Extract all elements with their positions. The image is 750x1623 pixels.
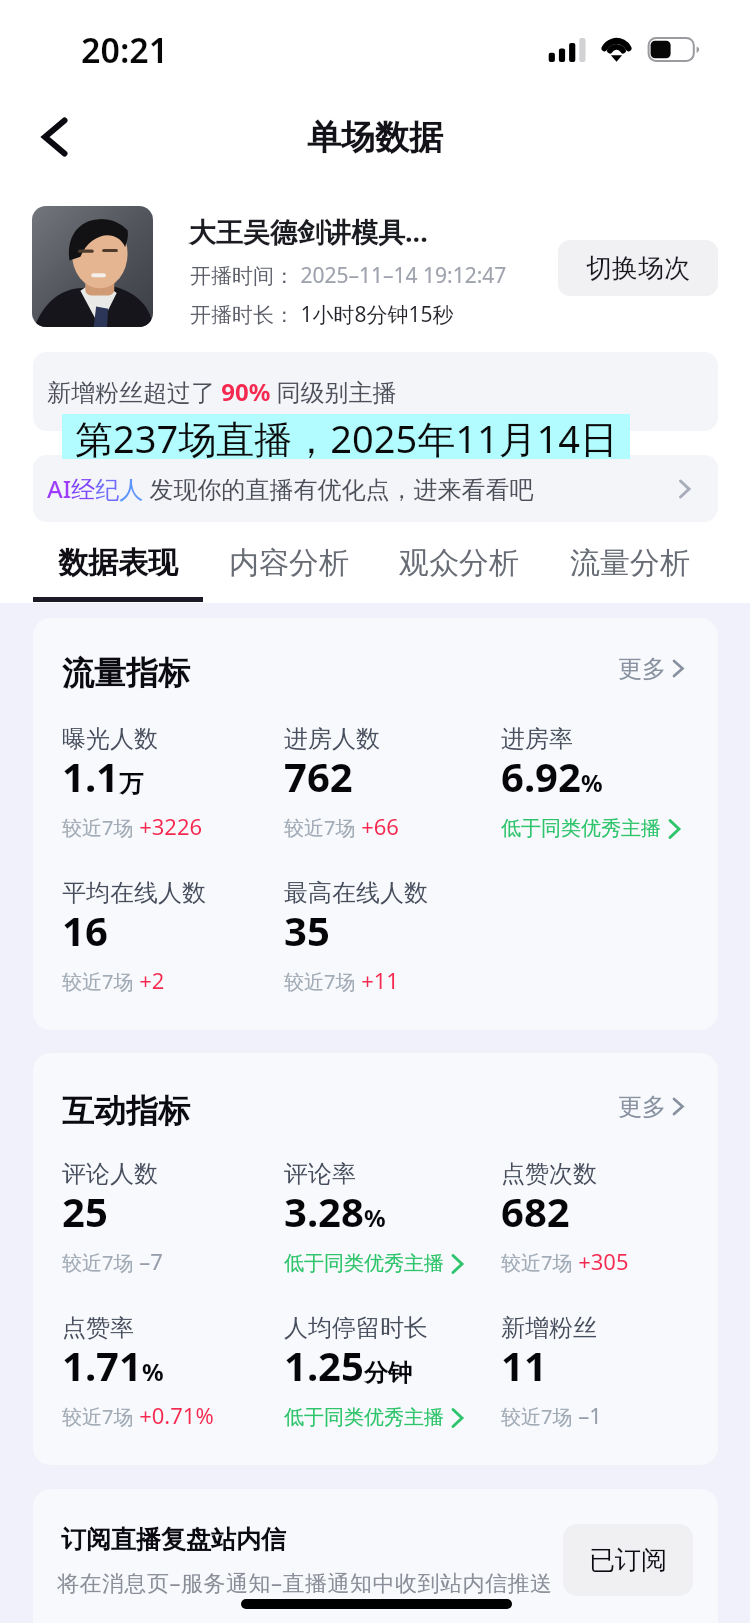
staticText: 较近7场 –1 bbox=[501, 1400, 602, 1430]
button[interactable]: 数据表现 bbox=[33, 528, 203, 604]
staticText: 11 bbox=[501, 1338, 547, 1392]
staticText: 1.71% bbox=[62, 1338, 164, 1392]
button[interactable]: 更多 bbox=[618, 1092, 688, 1122]
staticText: 20:21 bbox=[81, 27, 169, 73]
staticText: 第237场直播，2025年11月14日 bbox=[75, 412, 619, 464]
staticText: 开播时间： 2025–11–14 19:12:47 bbox=[190, 261, 507, 290]
staticText: 流量指标 bbox=[62, 653, 190, 693]
staticText: 3.28% bbox=[284, 1184, 386, 1238]
staticText: 低于同类优秀主播 bbox=[284, 1251, 444, 1276]
staticText: 新增粉丝超过了 90% 同级别主播 bbox=[47, 375, 397, 408]
button[interactable]: 更多 bbox=[618, 654, 688, 684]
button[interactable]: 观众分析 bbox=[374, 528, 544, 604]
staticText: 平均在线人数 bbox=[62, 878, 206, 908]
staticText: 切换场次 bbox=[586, 252, 690, 285]
staticText: 已订阅 bbox=[589, 1544, 667, 1577]
staticText: 1.1万 bbox=[62, 749, 143, 803]
staticText: 将在消息页–服务通知–直播通知中收到站内信推送 bbox=[57, 1567, 553, 1597]
button[interactable]: 流量分析 bbox=[545, 528, 715, 604]
button[interactable]: 低于同类优秀主播 bbox=[284, 1251, 468, 1276]
staticText: 订阅直播复盘站内信 bbox=[61, 1524, 286, 1555]
staticText: 开播时长： 1小时8分钟15秒 bbox=[190, 300, 454, 329]
staticText: 较近7场 +66 bbox=[284, 811, 399, 841]
staticText: 低于同类优秀主播 bbox=[501, 816, 661, 841]
button[interactable]: 切换场次 bbox=[558, 240, 718, 296]
staticText: 人均停留时长 bbox=[284, 1313, 428, 1343]
button[interactable]: AI经纪人 发现你的直播有优化点，进来看看吧 bbox=[33, 455, 718, 522]
staticText: 较近7场 +3226 bbox=[62, 811, 203, 841]
staticText: 点赞率 bbox=[62, 1313, 134, 1343]
button[interactable]: 低于同类优秀主播 bbox=[284, 1405, 468, 1430]
staticText: 762 bbox=[284, 749, 353, 803]
staticText: 数据表现 bbox=[58, 544, 178, 582]
staticText: 25 bbox=[62, 1184, 108, 1238]
button[interactable]: 已订阅 bbox=[563, 1524, 693, 1596]
staticText: 单场数据 bbox=[307, 116, 443, 159]
staticText: 低于同类优秀主播 bbox=[284, 1405, 444, 1430]
button[interactable]: 低于同类优秀主播 bbox=[501, 816, 685, 841]
staticText: 更多 bbox=[618, 1092, 666, 1122]
button[interactable]: 新增粉丝超过了 90% 同级别主播 bbox=[33, 352, 718, 431]
staticText: 较近7场 +11 bbox=[284, 965, 399, 995]
staticText: 流量分析 bbox=[570, 544, 690, 582]
staticText: 进房率 bbox=[501, 724, 573, 754]
staticText: 较近7场 +305 bbox=[501, 1246, 629, 1276]
staticText: 互动指标 bbox=[62, 1091, 190, 1131]
staticText: 1.25分钟 bbox=[284, 1338, 412, 1392]
staticText: 大王吴德剑讲模具... bbox=[189, 213, 428, 250]
staticText: 观众分析 bbox=[399, 544, 519, 582]
staticText: 点赞次数 bbox=[501, 1159, 597, 1189]
staticText: 682 bbox=[501, 1184, 570, 1238]
staticText: 最高在线人数 bbox=[284, 878, 428, 908]
staticText: 较近7场 +0.71% bbox=[62, 1400, 214, 1430]
staticText: 较近7场 +2 bbox=[62, 965, 165, 995]
staticText: 曝光人数 bbox=[62, 724, 158, 754]
staticText: 评论人数 bbox=[62, 1159, 158, 1189]
staticText: 内容分析 bbox=[229, 544, 349, 582]
button[interactable]: 内容分析 bbox=[204, 528, 374, 604]
staticText: 35 bbox=[284, 903, 330, 957]
staticText: 新增粉丝 bbox=[501, 1313, 597, 1343]
staticText: 较近7场 –7 bbox=[62, 1246, 163, 1276]
button[interactable]: Back bbox=[13, 97, 93, 177]
staticText: 评论率 bbox=[284, 1159, 356, 1189]
staticText: 16 bbox=[62, 903, 108, 957]
staticText: 6.92% bbox=[501, 749, 603, 803]
staticText: AI经纪人 发现你的直播有优化点，进来看看吧 bbox=[47, 472, 534, 505]
staticText: 进房人数 bbox=[284, 724, 380, 754]
staticText: 更多 bbox=[618, 654, 666, 684]
